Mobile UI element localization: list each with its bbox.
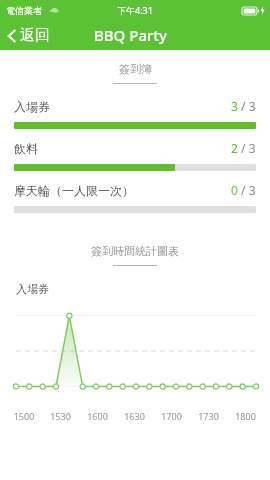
staticText: 飲料 <box>14 141 231 156</box>
staticText: / 3 <box>238 98 256 114</box>
button[interactable]: 摩天輪（一人限一次） <box>0 182 270 224</box>
staticText: BBQ Party <box>94 25 168 45</box>
staticText: 3 <box>231 98 238 114</box>
button[interactable]: 返回 <box>0 22 58 49</box>
staticText: 1530 <box>42 410 79 422</box>
staticText: 1600 <box>79 410 116 422</box>
button[interactable]: 飲料 <box>0 140 270 182</box>
staticText: 入場券 <box>16 282 49 296</box>
staticText: 1700 <box>153 410 190 422</box>
staticText: 下午4:31 <box>117 4 153 16</box>
staticText: 簽到簿 <box>119 62 152 76</box>
staticText: / 3 <box>238 182 256 198</box>
staticText: 返回 <box>20 26 50 45</box>
button[interactable]: 入場券 <box>0 98 270 140</box>
staticText: 入場券 <box>14 99 231 114</box>
staticText: 2 <box>231 140 238 156</box>
staticText: 簽到時間統計圖表 <box>91 244 179 258</box>
staticText: 0 <box>231 182 238 198</box>
staticText: 電信業者 <box>6 5 42 16</box>
staticText: 摩天輪（一人限一次） <box>14 183 231 198</box>
staticText: 1630 <box>116 410 153 422</box>
staticText: / 3 <box>238 140 256 156</box>
staticText: 1800 <box>227 410 264 422</box>
staticText: 1730 <box>190 410 227 422</box>
staticText: 1500 <box>6 410 42 422</box>
